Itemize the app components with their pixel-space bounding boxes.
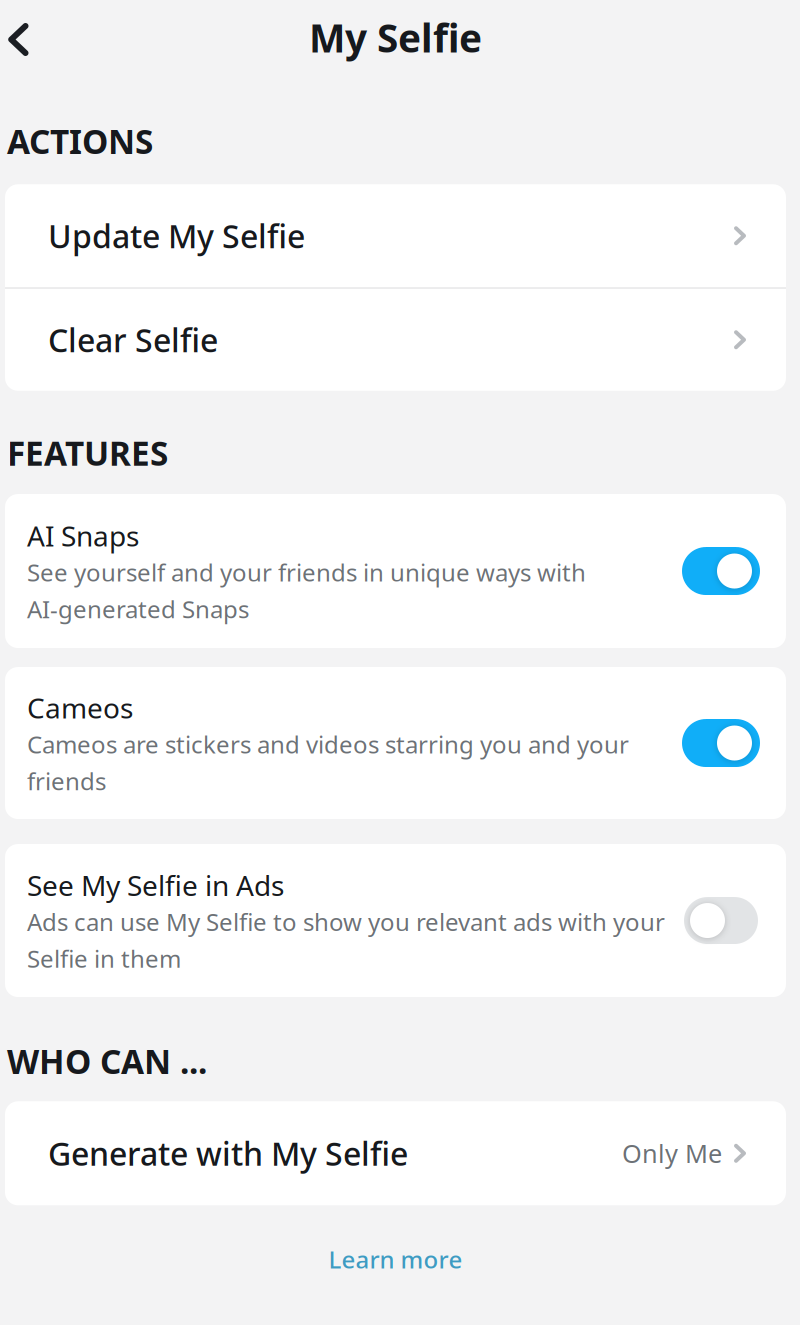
button[interactable]: Cameos: [682, 719, 760, 767]
staticText: See My Selfie in Ads: [27, 867, 284, 904]
staticText: My Selfie: [309, 12, 482, 63]
button[interactable]: Back: [5, 15, 29, 60]
staticText: See yourself and your friends in unique …: [27, 556, 586, 625]
staticText: Only Me: [622, 1136, 722, 1170]
button[interactable]: Generate with My Selfie: [5, 1101, 786, 1205]
staticText: Update My Selfie: [48, 214, 305, 257]
staticText: Generate with My Selfie: [48, 1132, 408, 1174]
staticText: Clear Selfie: [48, 318, 218, 361]
staticText: FEATURES: [7, 431, 168, 475]
staticText: Cameos: [27, 689, 133, 726]
button[interactable]: AI Snaps: [682, 547, 760, 595]
staticText: ACTIONS: [7, 119, 153, 163]
staticText: Cameos are stickers and videos starring …: [27, 728, 629, 797]
button[interactable]: Clear Selfie: [5, 289, 786, 391]
staticText: AI Snaps: [27, 517, 139, 554]
staticText: Learn more: [328, 1243, 462, 1275]
button[interactable]: Update My Selfie: [5, 184, 786, 287]
button[interactable]: Learn more: [304, 1235, 486, 1283]
button[interactable]: See My Selfie in Ads: [682, 896, 760, 944]
staticText: WHO CAN ...: [7, 1039, 207, 1083]
staticText: Ads can use My Selfie to show you releva…: [27, 906, 665, 974]
